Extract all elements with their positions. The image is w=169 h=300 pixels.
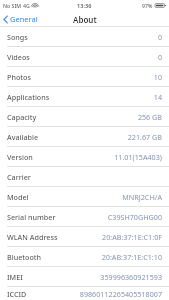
staticText: Version: [7, 152, 33, 162]
button[interactable]: Model: [0, 187, 169, 206]
staticText: Serial number: [7, 212, 56, 222]
staticText: 10: [153, 72, 162, 82]
staticText: Bluetooth: [7, 252, 42, 262]
staticText: Videos: [7, 52, 30, 62]
staticText: IMEI: [7, 272, 23, 282]
staticText: 4G: [23, 2, 30, 9]
staticText: 20:AB:37:1E:C1:10: [101, 252, 162, 262]
staticText: 221.67 GB: [127, 132, 162, 142]
button[interactable]: Videos: [0, 47, 169, 66]
staticText: 0: [157, 32, 162, 42]
staticText: 97%: [142, 2, 153, 9]
button[interactable]: Bluetooth: [0, 247, 169, 266]
button[interactable]: Available: [0, 127, 169, 146]
button[interactable]: IMEI: [0, 267, 169, 286]
staticText: Carrier: [7, 172, 31, 182]
staticText: Applications: [7, 92, 50, 102]
staticText: General: [10, 14, 38, 24]
staticText: MNRJ2CH/A: [122, 192, 162, 202]
staticText: Photos: [7, 72, 31, 82]
staticText: 13:36: [77, 2, 92, 10]
staticText: ICCID: [7, 289, 27, 299]
staticText: 11.01(15A403): [114, 152, 162, 162]
staticText: WLAN Address: [7, 232, 58, 242]
button[interactable]: Carrier: [0, 167, 169, 186]
staticText: Model: [7, 192, 29, 202]
button[interactable]: Applications: [0, 87, 169, 106]
button[interactable]: Capacity: [0, 107, 169, 126]
button[interactable]: WLAN Address: [0, 227, 169, 246]
staticText: 20:AB:37:1E:C1:0F: [102, 232, 162, 242]
button[interactable]: ICCID: [0, 287, 169, 300]
button[interactable]: General: [0, 12, 44, 26]
staticText: C39SH70GHG00: [107, 212, 162, 222]
staticText: 89860112265405518007: [79, 289, 162, 299]
staticText: About: [73, 14, 97, 25]
button[interactable]: Version: [0, 147, 169, 166]
button[interactable]: Serial number: [0, 207, 169, 226]
staticText: 0: [157, 52, 162, 62]
staticText: 359996360921593: [100, 272, 162, 282]
staticText: Songs: [7, 32, 28, 42]
button[interactable]: Songs: [0, 27, 169, 46]
staticText: 256 GB: [137, 112, 162, 122]
staticText: Capacity: [7, 112, 37, 122]
staticText: Available: [7, 132, 39, 142]
button[interactable]: Photos: [0, 67, 169, 86]
staticText: 14: [153, 92, 162, 102]
staticText: No SIM: [3, 2, 21, 9]
